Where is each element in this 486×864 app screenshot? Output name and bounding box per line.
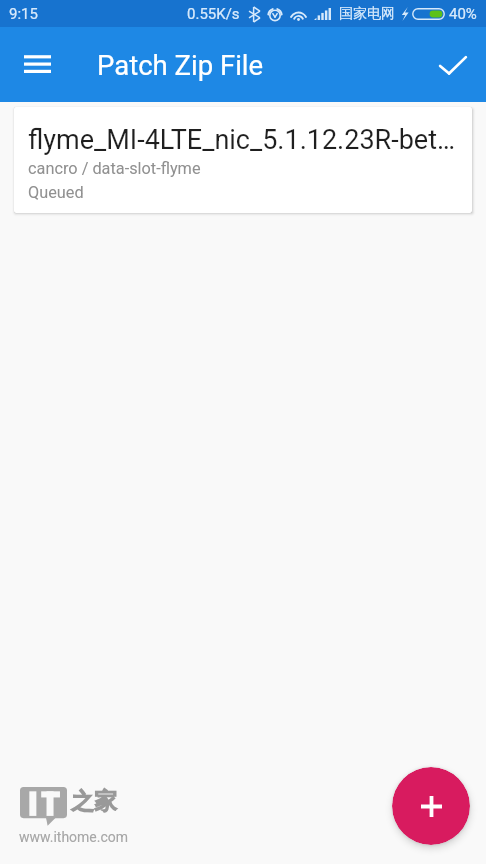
staticText: 之家 <box>71 787 117 816</box>
staticText: www.ithome.com <box>19 829 129 845</box>
staticText: 0.55K/s <box>187 5 240 23</box>
button[interactable]: flyme_MI-4LTE_nic_5.1.12.23R-bet… <box>14 107 472 213</box>
staticText: cancro / data-slot-flyme <box>28 159 201 178</box>
staticText: Queued <box>28 183 84 202</box>
staticText: 国家电网 <box>339 5 395 23</box>
button[interactable]: Open navigation menu <box>13 41 61 89</box>
staticText: Patch Zip File <box>97 49 264 81</box>
staticText: flyme_MI-4LTE_nic_5.1.12.23R-bet… <box>28 124 456 156</box>
staticText: 9:15 <box>9 5 38 23</box>
button[interactable]: Add <box>392 767 470 845</box>
button[interactable]: Confirm <box>429 41 477 89</box>
staticText: 40% <box>449 5 477 23</box>
